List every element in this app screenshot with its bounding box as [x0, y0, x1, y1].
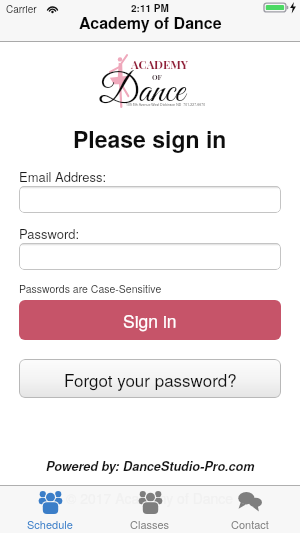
button[interactable]: Text field	[19, 243, 281, 270]
button[interactable]: Contact	[200, 486, 300, 533]
staticText: Powered by: DanceStudio-Pro.com	[46, 457, 255, 475]
button[interactable]: Schedule	[0, 486, 100, 533]
staticText: Forgot your password?	[64, 367, 237, 391]
staticText: Classes	[130, 516, 170, 532]
staticText: Academy of Dance	[79, 11, 222, 34]
staticText: Carrier	[6, 2, 37, 16]
staticText: Dance	[98, 69, 185, 117]
button[interactable]: Classes	[100, 486, 200, 533]
button[interactable]: Sign in	[19, 300, 281, 340]
staticText: Password:	[19, 224, 80, 243]
staticText: © 2017 Academy of Dance	[66, 488, 234, 508]
staticText: Please sign in	[73, 122, 227, 155]
staticText: Contact	[231, 516, 269, 532]
staticText: Schedule	[27, 516, 73, 532]
staticText: 105 8th Avenue West Dickinson ND 701-227…	[126, 102, 206, 107]
staticText: Email Address:	[19, 167, 107, 186]
staticText: ACADEMY	[131, 57, 189, 72]
button[interactable]: Text field	[19, 186, 281, 213]
button[interactable]: Forgot your password?	[19, 359, 281, 398]
staticText: 2:11 PM	[131, 1, 169, 15]
staticText: Sign in	[123, 308, 177, 333]
staticText: Passwords are Case-Sensitive	[19, 281, 162, 296]
staticText: OF	[152, 72, 162, 81]
